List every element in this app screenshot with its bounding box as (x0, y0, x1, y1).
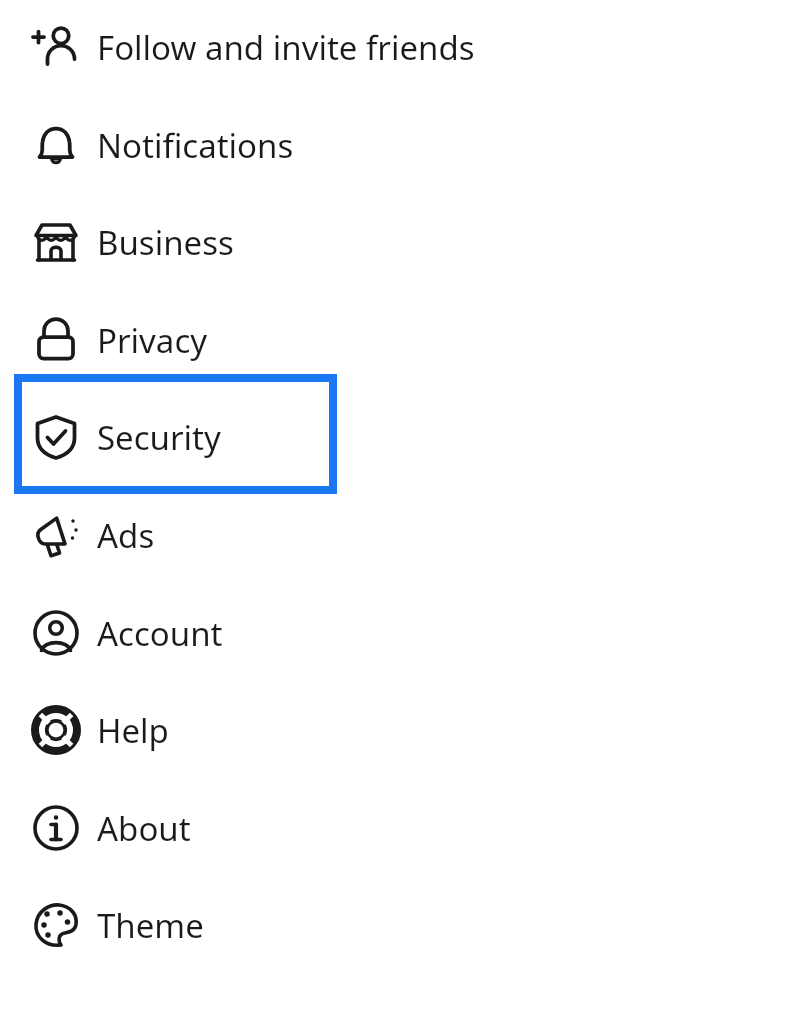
button[interactable]: Help (0, 686, 799, 774)
button[interactable]: Follow and invite friends (0, 3, 799, 91)
other: Theme (31, 900, 81, 950)
other: Security (31, 412, 81, 462)
button[interactable]: Account (0, 589, 799, 677)
other: About (31, 803, 81, 853)
button[interactable]: About (0, 784, 799, 872)
button[interactable]: Ads (0, 491, 799, 579)
other: Account (31, 608, 81, 658)
button[interactable]: Business (0, 198, 799, 286)
other: Notifications (31, 120, 81, 170)
staticText: Follow and invite friends (97, 25, 475, 70)
staticText: Theme (97, 903, 204, 948)
staticText: Security (97, 415, 221, 460)
button[interactable]: Privacy (0, 296, 799, 384)
staticText: Business (97, 220, 234, 265)
other: Ads (31, 510, 81, 560)
staticText: Notifications (97, 123, 294, 168)
other: Privacy (31, 315, 81, 365)
other: Help (31, 705, 81, 755)
other: Follow and invite friends (31, 22, 81, 72)
staticText: Account (97, 611, 223, 656)
button[interactable]: Notifications (0, 101, 799, 189)
staticText: Privacy (97, 318, 208, 363)
staticText: Help (97, 708, 169, 753)
staticText: About (97, 806, 191, 851)
button[interactable]: Security (0, 393, 799, 481)
button[interactable]: Theme (0, 881, 799, 969)
staticText: Ads (97, 513, 155, 558)
other: Business (31, 217, 81, 267)
